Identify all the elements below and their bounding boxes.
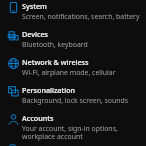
other: System (8, 2, 19, 13)
staticText: Your account, sign-in options, workplace… (22, 124, 143, 141)
button[interactable]: Network and wireless (0, 56, 146, 77)
staticText: Accounts (22, 113, 54, 123)
button[interactable]: Devices (0, 28, 146, 49)
staticText: Personalization (22, 85, 76, 95)
button[interactable]: System (0, 0, 146, 21)
staticText: Screen, notifications, search, battery (22, 12, 140, 21)
staticText: Wi-Fi, airplane mode, cellular (22, 68, 116, 77)
staticText: Network & wireless (22, 57, 89, 67)
button[interactable]: Personalization (0, 84, 146, 105)
staticText: Background, lock screen, sounds (22, 96, 129, 105)
button[interactable]: Accounts (0, 112, 146, 141)
staticText: Bluetooth, keyboard (22, 40, 88, 49)
other: Devices (8, 30, 19, 41)
other: Personalization (8, 86, 19, 97)
other: Accounts (8, 114, 19, 125)
staticText: System (22, 1, 47, 11)
other: Network and wireless (8, 58, 19, 69)
staticText: Devices (22, 29, 49, 39)
